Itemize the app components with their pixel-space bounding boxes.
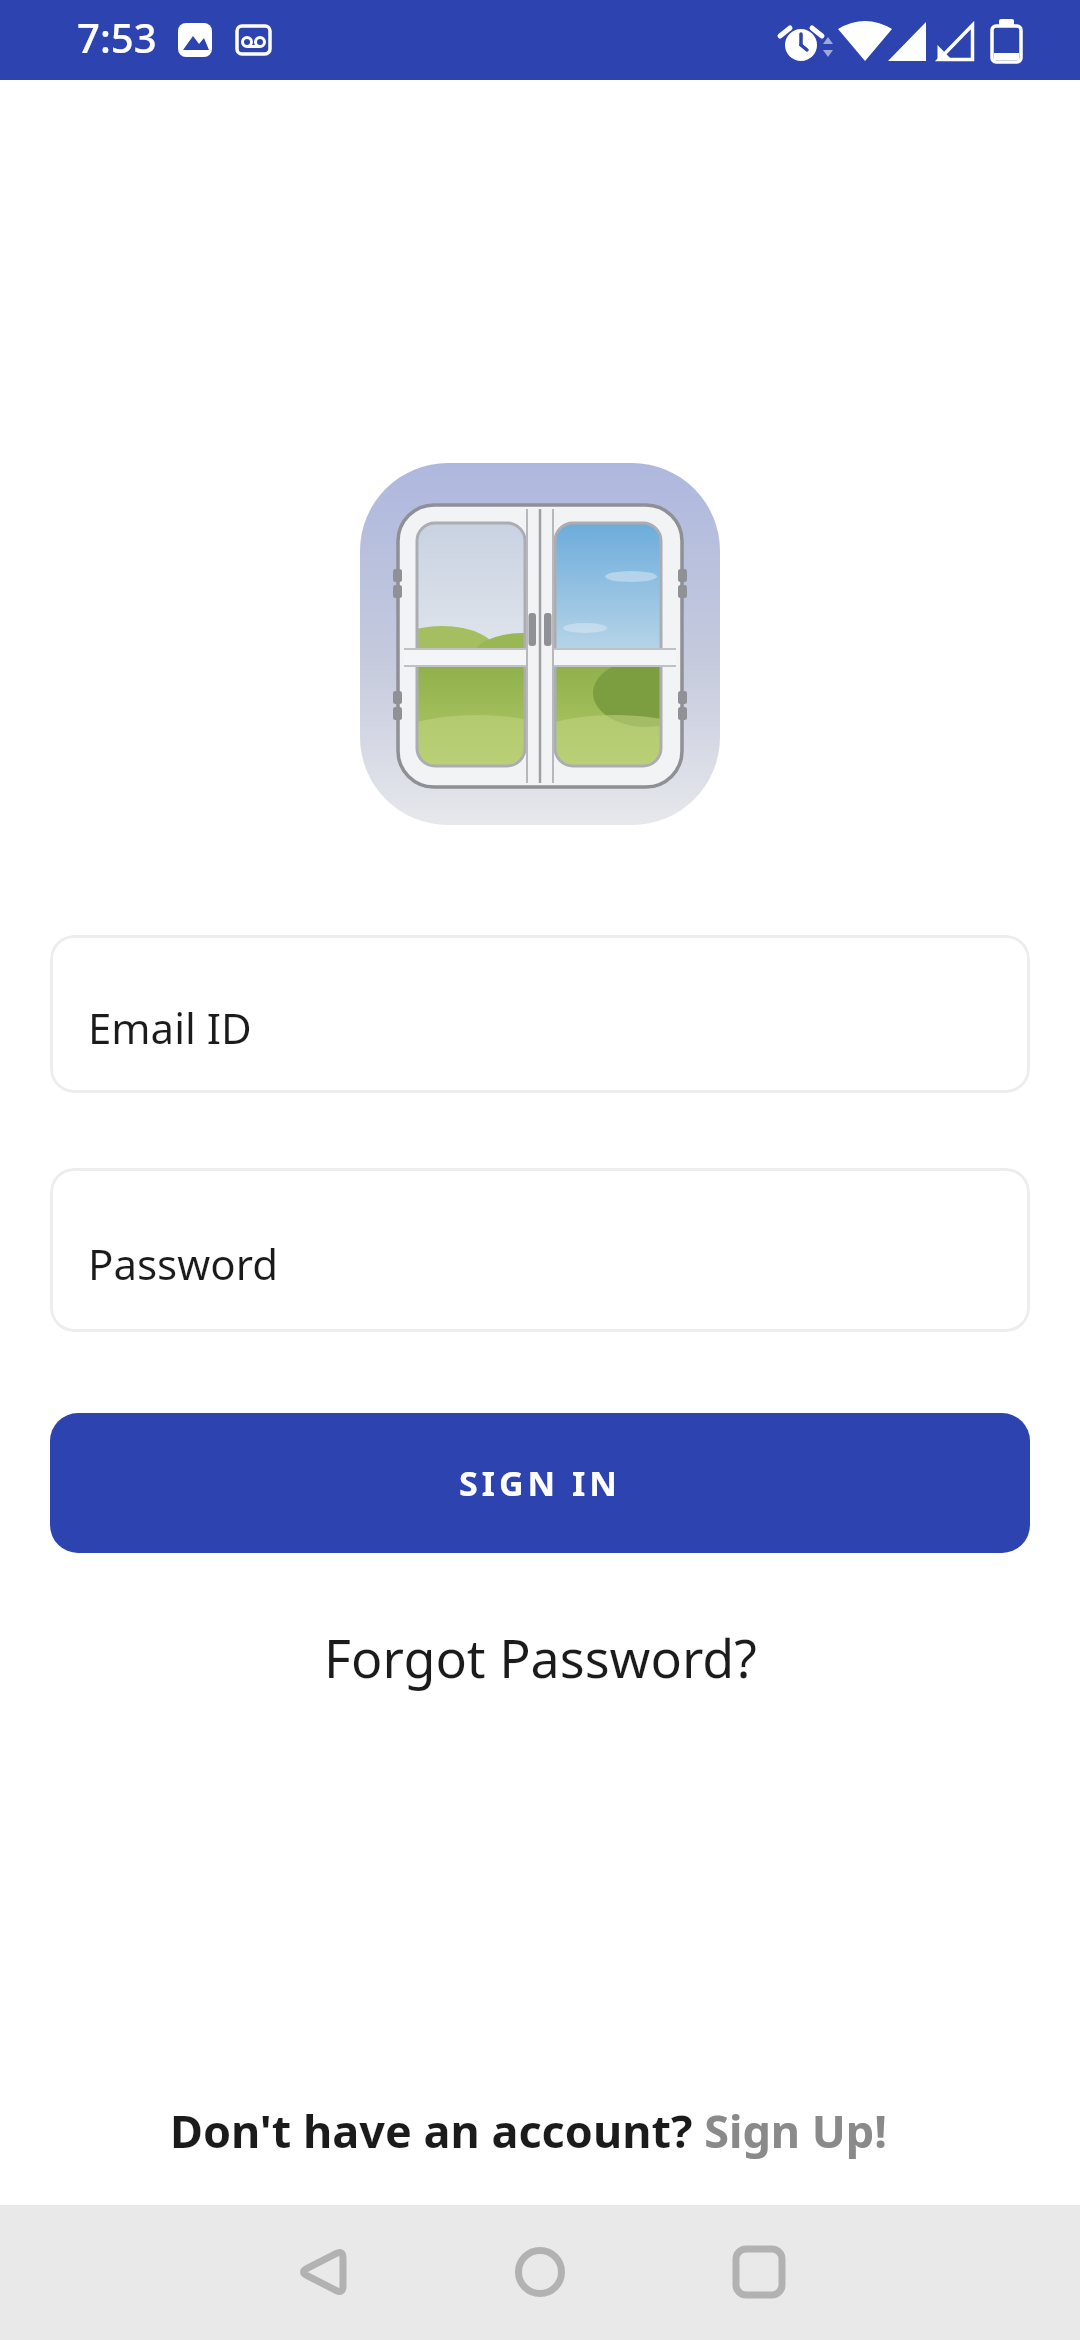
button[interactable]: Email ID	[50, 935, 1030, 1093]
button[interactable]	[496, 2228, 584, 2316]
staticText: 7:53	[77, 10, 157, 64]
button[interactable]	[279, 2228, 367, 2316]
button[interactable]: Forgot Password?	[324, 1622, 757, 1693]
button[interactable]: SIGN IN	[50, 1413, 1030, 1553]
staticText: SIGN IN	[459, 1460, 621, 1506]
button[interactable]	[715, 2228, 803, 2316]
staticText: Password	[88, 1235, 278, 1292]
button[interactable]: Don't have an account? Sign Up!	[170, 2100, 887, 2161]
staticText: Email ID	[88, 999, 252, 1056]
button[interactable]: Password	[50, 1168, 1030, 1332]
